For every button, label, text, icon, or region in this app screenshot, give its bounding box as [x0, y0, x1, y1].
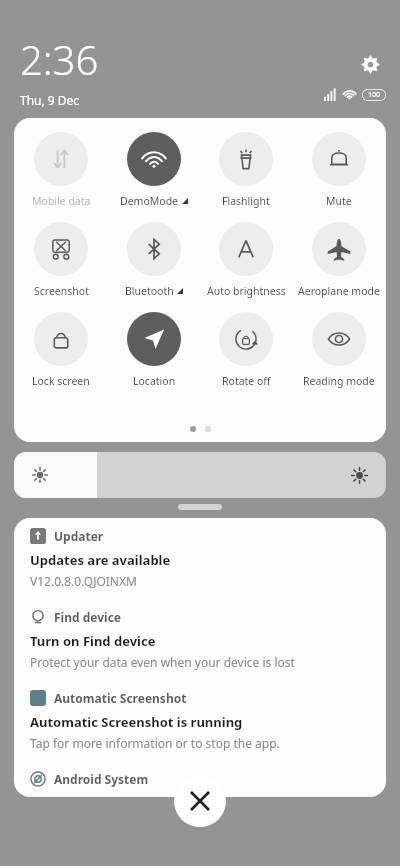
staticText: Turn on Find device — [30, 632, 156, 650]
button[interactable]: DemoMode — [109, 132, 199, 208]
button[interactable]: Find device — [14, 599, 386, 680]
button[interactable]: Auto brightness — [201, 222, 291, 298]
staticText: Bluetooth — [125, 284, 174, 298]
staticText: Rotate off — [222, 374, 271, 388]
staticText: Tap for more information or to stop the … — [30, 735, 280, 751]
staticText: 100 — [368, 90, 381, 100]
button[interactable]: Clear all notifications — [174, 775, 226, 827]
staticText: Android System — [54, 771, 149, 787]
staticText: Updates are available — [30, 551, 171, 569]
staticText: Location — [133, 374, 176, 388]
staticText: Mobile data — [32, 194, 91, 208]
staticText: Flashlight — [222, 194, 270, 208]
staticText: Auto brightness — [207, 284, 286, 298]
button[interactable]: Updater — [14, 518, 386, 599]
staticText: Find device — [54, 609, 121, 625]
button[interactable]: Lock screen — [16, 312, 106, 388]
staticText: DemoMode — [120, 194, 179, 208]
button[interactable]: Aeroplane mode — [294, 222, 384, 298]
staticText: Lock screen — [32, 374, 90, 388]
button[interactable]: Flashlight — [201, 132, 291, 208]
button[interactable]: Screenshot — [16, 222, 106, 298]
staticText: Screenshot — [34, 284, 89, 298]
button[interactable]: Settings — [356, 50, 384, 78]
staticText: Reading mode — [303, 374, 375, 388]
staticText: Automatic Screenshot — [54, 690, 187, 706]
button[interactable]: Rotate off — [201, 312, 291, 388]
button[interactable]: Location — [109, 312, 199, 388]
staticText: Aeroplane mode — [298, 284, 380, 298]
button[interactable]: Brightness — [14, 452, 386, 498]
staticText: Protect your data even when your device … — [30, 654, 295, 670]
button[interactable]: Mute — [294, 132, 384, 208]
button[interactable]: Automatic Screenshot — [14, 680, 386, 761]
button[interactable]: Bluetooth — [109, 222, 199, 298]
staticText: V12.0.8.0.QJOINXM — [30, 573, 137, 589]
staticText: Updater — [54, 528, 104, 544]
button[interactable]: Reading mode — [294, 312, 384, 388]
staticText: Thu, 9 Dec — [20, 92, 80, 108]
staticText: 2:36 — [20, 32, 99, 86]
button[interactable]: Mobile data — [16, 132, 106, 208]
staticText: Mute — [326, 194, 352, 208]
button[interactable]: Android System — [14, 761, 386, 797]
staticText: Automatic Screenshot is running — [30, 713, 243, 731]
